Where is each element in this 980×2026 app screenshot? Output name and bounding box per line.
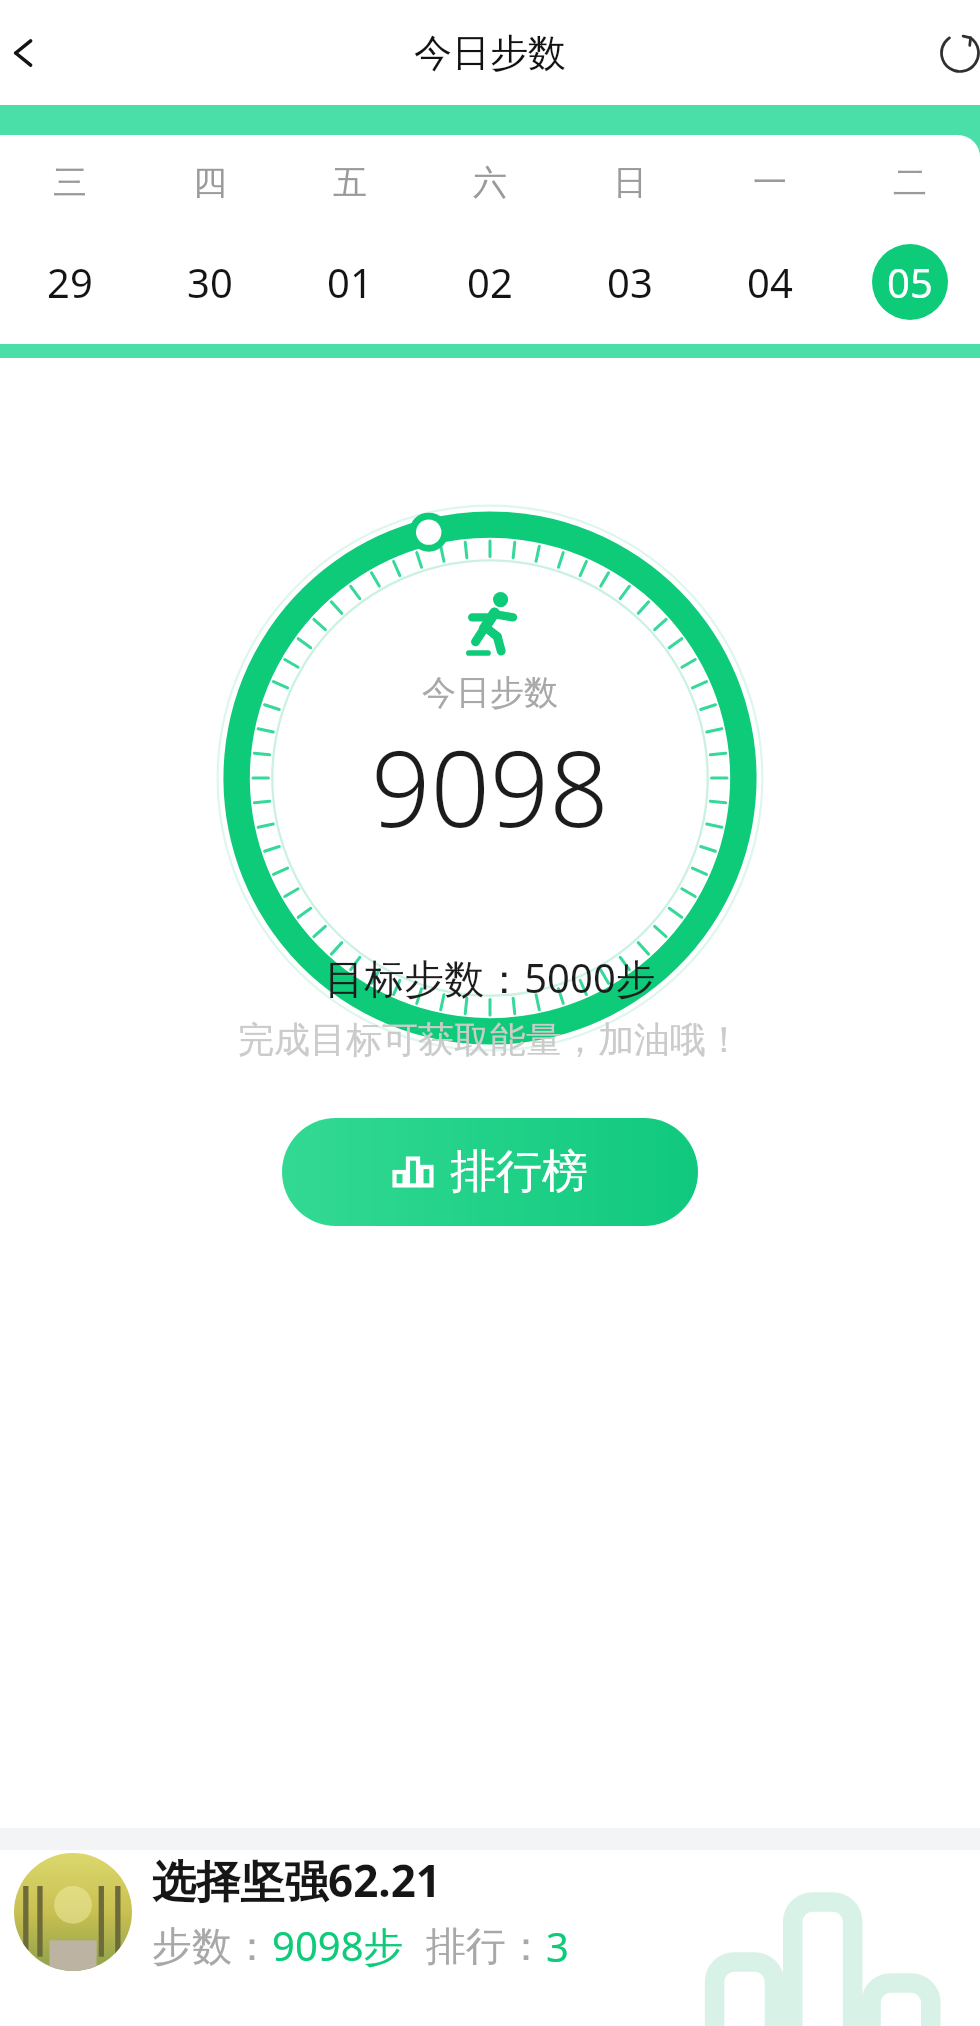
staticText: 3 [546, 1919, 569, 1973]
staticText: 目标步数：5000步 [324, 950, 656, 1005]
button[interactable]: 04 [700, 244, 840, 320]
button[interactable]: 30 [140, 244, 280, 320]
staticText: 二 [893, 161, 927, 204]
staticText: 04 [747, 255, 793, 309]
staticText: 29 [47, 255, 93, 309]
staticText: 六 [473, 161, 507, 204]
staticText: 05 [887, 255, 933, 309]
button[interactable]: 05 [840, 244, 980, 320]
staticText: 今日步数 [422, 671, 558, 714]
button[interactable]: 选择坚强62.21 [0, 1850, 980, 2026]
button[interactable]: 03 [560, 244, 700, 320]
staticText: 01 [327, 255, 373, 309]
staticText: 完成目标可获取能量，加油哦！ [238, 1017, 742, 1062]
staticText: 步数： [152, 1921, 272, 1971]
button[interactable]: 返回 [0, 21, 46, 85]
staticText: 排行： [426, 1921, 546, 1971]
staticText: 02 [467, 255, 513, 309]
staticText: 选择坚强62.21 [152, 1850, 442, 1910]
staticText: 9098 [371, 716, 609, 858]
button[interactable]: 排行榜 [282, 1118, 698, 1226]
staticText: 五 [333, 161, 367, 204]
staticText: 四 [193, 161, 227, 204]
staticText: 今日步数 [414, 29, 566, 77]
button[interactable]: 02 [420, 244, 560, 320]
button[interactable]: 分享 [928, 21, 980, 85]
staticText: 03 [607, 255, 653, 309]
staticText: 一 [753, 161, 787, 204]
staticText: 30 [187, 255, 233, 309]
button[interactable]: 29 [0, 244, 140, 320]
button[interactable]: 01 [280, 244, 420, 320]
staticText: 排行榜 [450, 1143, 588, 1201]
staticText: 日 [613, 161, 647, 204]
staticText: 三 [53, 161, 87, 204]
staticText: 9098步 [272, 1918, 404, 1973]
